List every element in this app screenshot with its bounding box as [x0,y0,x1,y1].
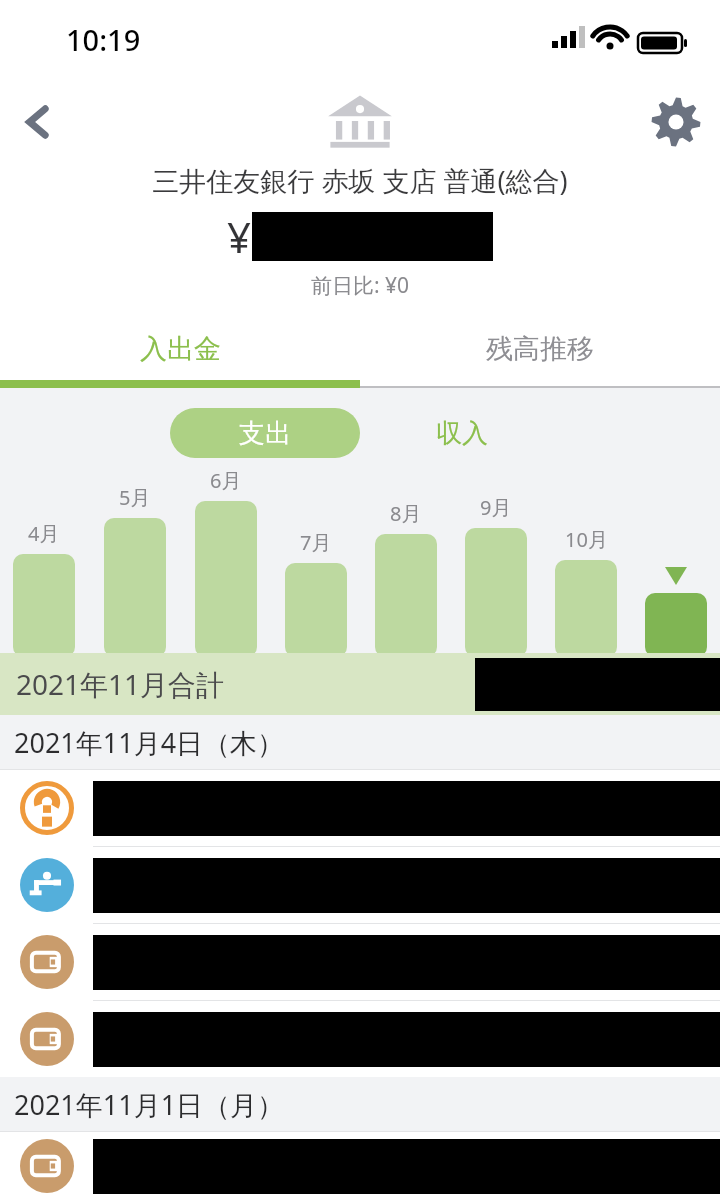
button[interactable] [0,1132,720,1200]
staticText: 残高推移 [486,332,594,366]
button[interactable]: 収入 [436,417,488,450]
button[interactable] [0,1001,720,1077]
button[interactable]: 残高推移 [360,318,720,380]
staticText: 7月 [300,529,332,556]
button[interactable] [0,770,720,847]
staticText: ¥ [227,208,252,265]
staticText: 2021年11月1日（月） [14,1086,285,1123]
button[interactable]: Settings [650,96,702,148]
staticText: 9月 [480,494,512,521]
button[interactable]: 2021年11月合計 [0,653,720,715]
staticText: 5月 [119,484,151,511]
staticText: 支出 [239,417,291,450]
staticText: 三井住友銀行 赤坂 支店 普通(総合) [152,162,568,199]
staticText: 2021年11月合計 [16,665,225,703]
button[interactable]: 支出 [170,408,360,458]
button[interactable] [0,924,720,1001]
button[interactable]: 入出金 [0,318,360,380]
staticText: 10月 [565,526,608,553]
button[interactable]: Back [8,92,68,152]
staticText: 6月 [210,467,242,494]
staticText: 入出金 [140,332,221,366]
staticText: 収入 [436,417,488,450]
staticText: 8月 [390,500,422,527]
staticText: 10:19 [66,20,141,59]
button[interactable] [0,847,720,924]
staticText: 前日比: ¥0 [311,271,410,300]
staticText: 2021年11月4日（木） [14,724,285,761]
staticText: 4月 [28,520,60,547]
